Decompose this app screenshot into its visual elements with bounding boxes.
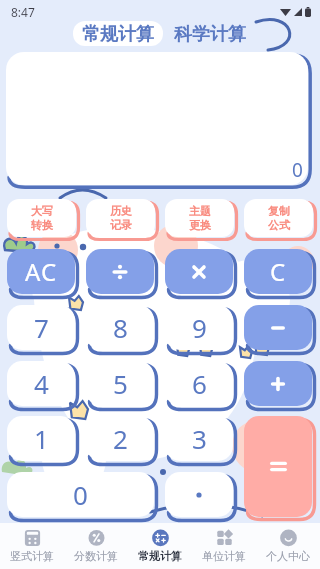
staticText: 复制 公式 (268, 204, 290, 232)
staticText: 8:47 (11, 4, 35, 20)
button[interactable]: 常规计算 (128, 523, 192, 569)
staticText: 历史 记录 (110, 204, 132, 232)
button[interactable]: 2 (86, 416, 154, 461)
button[interactable]: 5 (86, 361, 154, 406)
button[interactable] (244, 361, 312, 406)
button[interactable]: 竖式计算 (0, 523, 64, 569)
staticText: 竖式计算 (10, 549, 54, 563)
button[interactable]: 主题 更换 (165, 199, 234, 237)
staticText: AC (25, 255, 58, 288)
button[interactable]: 3 (165, 416, 233, 461)
button[interactable]: 个人中心 (256, 523, 320, 569)
button[interactable]: 大写 转换 (7, 199, 76, 237)
button[interactable]: 9 (165, 305, 233, 350)
staticText: 主题 更换 (189, 204, 211, 232)
staticText: C (270, 255, 286, 288)
staticText: 3 (192, 421, 207, 456)
button[interactable]: 0 (7, 472, 154, 517)
button[interactable]: 8 (86, 305, 154, 350)
staticText: 常规计算 (82, 23, 154, 44)
button[interactable]: 6 (165, 361, 233, 406)
button[interactable] (244, 305, 312, 350)
staticText: 6 (192, 366, 207, 401)
button[interactable]: 1 (7, 416, 75, 461)
button[interactable] (165, 472, 233, 517)
staticText: 8 (113, 310, 128, 345)
button[interactable] (165, 249, 233, 294)
button[interactable]: 分数计算 (64, 523, 128, 569)
staticText: 2 (113, 421, 128, 456)
button[interactable] (86, 249, 154, 294)
staticText: 4 (34, 366, 49, 401)
button[interactable]: 7 (7, 305, 75, 350)
button[interactable]: 常规计算 (73, 21, 163, 46)
button[interactable]: 单位计算 (192, 523, 256, 569)
button[interactable]: 科学计算 (172, 21, 248, 46)
staticText: 0 (73, 477, 88, 512)
button[interactable]: AC (7, 249, 75, 294)
button[interactable] (244, 416, 312, 517)
staticText: 1 (34, 421, 49, 456)
button[interactable]: 复制 公式 (244, 199, 313, 237)
staticText: 0 (292, 157, 303, 183)
staticText: 常规计算 (138, 549, 182, 563)
staticText: 单位计算 (202, 549, 246, 563)
button[interactable]: 4 (7, 361, 75, 406)
staticText: 7 (34, 310, 49, 345)
button[interactable]: 历史 记录 (86, 199, 155, 237)
button[interactable]: 0 (6, 52, 308, 185)
button[interactable]: C (244, 249, 312, 294)
staticText: 5 (113, 366, 128, 401)
staticText: 9 (192, 310, 207, 345)
staticText: 分数计算 (74, 549, 118, 563)
staticText: 大写 转换 (31, 204, 53, 232)
staticText: 个人中心 (266, 549, 310, 563)
staticText: 科学计算 (174, 23, 246, 44)
